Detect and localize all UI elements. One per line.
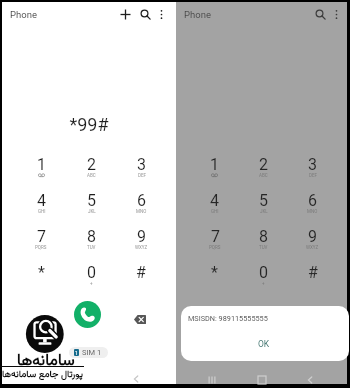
staticText: SIM 1 [82, 348, 102, 357]
staticText: 9 [308, 227, 317, 246]
staticText: 4 [210, 191, 219, 210]
button[interactable]: # [116, 263, 166, 299]
staticText: Phone [10, 9, 37, 20]
button[interactable]: * [16, 263, 66, 299]
button[interactable]: 7 [16, 227, 66, 263]
button[interactable]: Call [74, 301, 101, 328]
staticText: + [90, 281, 93, 286]
staticText: پورتال جامع سامانه‌ها [2, 367, 83, 382]
staticText: 9 [137, 227, 146, 246]
button[interactable]: Search [311, 5, 329, 23]
staticText: TUV [259, 245, 268, 250]
staticText: + [262, 281, 265, 286]
button[interactable]: 3 [116, 155, 166, 191]
button[interactable]: Recent apps [203, 371, 220, 388]
staticText: 5 [87, 191, 96, 210]
button[interactable]: Search [136, 5, 154, 23]
button[interactable]: 8 [239, 227, 288, 263]
staticText: 4 [37, 191, 46, 210]
staticText: PQRS [35, 245, 47, 250]
button[interactable]: Add [116, 5, 134, 23]
staticText: ABC [87, 173, 96, 178]
staticText: # [136, 263, 146, 282]
staticText: سامانه‌ها [17, 349, 75, 374]
staticText: 6 [308, 191, 317, 210]
button[interactable]: 7 [190, 227, 239, 263]
button[interactable]: 9 [288, 227, 337, 263]
button[interactable]: 5 [239, 191, 288, 227]
button[interactable]: Back [127, 370, 144, 387]
button[interactable]: 1 [16, 155, 66, 191]
staticText: 5 [259, 191, 268, 210]
button[interactable]: 3 [288, 155, 337, 191]
staticText: 2 [87, 155, 96, 174]
staticText: 2 [259, 155, 268, 174]
button[interactable]: * [190, 263, 239, 299]
button[interactable]: 2 [239, 155, 288, 191]
button[interactable]: Home [253, 371, 270, 388]
button[interactable]: 2 [66, 155, 116, 191]
staticText: MNO [136, 209, 147, 214]
button[interactable]: # [288, 263, 337, 299]
button[interactable]: 8 [66, 227, 116, 263]
button[interactable]: 1 [190, 155, 239, 191]
button[interactable]: 0 [239, 263, 288, 299]
button[interactable]: OK [248, 337, 280, 351]
staticText: 0 [87, 263, 96, 282]
staticText: 1 [75, 350, 78, 356]
staticText: GHI [38, 209, 46, 214]
staticText: MSISDN: 989115555555 [188, 314, 268, 323]
staticText: 7 [37, 227, 46, 246]
button[interactable]: More options [327, 5, 345, 23]
staticText: WXYZ [135, 245, 148, 250]
staticText: JKL [88, 209, 96, 214]
button[interactable]: 4 [190, 191, 239, 227]
button[interactable]: 1 [69, 347, 108, 358]
staticText: DEF [138, 173, 146, 178]
button[interactable]: 0 [66, 263, 116, 299]
button[interactable]: 9 [116, 227, 166, 263]
button[interactable]: 6 [288, 191, 337, 227]
staticText: 8 [259, 227, 268, 246]
staticText: OK [258, 339, 270, 349]
staticText: ABC [259, 173, 268, 178]
staticText: *99# [2, 114, 176, 135]
staticText: TUV [87, 245, 96, 250]
staticText: JKL [260, 209, 268, 214]
staticText: 0 [259, 263, 268, 282]
staticText: MNO [307, 209, 318, 214]
staticText: 7 [211, 227, 220, 246]
staticText: 6 [137, 191, 146, 210]
button[interactable]: Backspace [128, 307, 152, 331]
staticText: * [211, 263, 218, 282]
staticText: 1 [37, 155, 46, 174]
staticText: WXYZ [306, 245, 319, 250]
staticText: GHI [211, 209, 219, 214]
button[interactable]: More options [152, 5, 170, 23]
staticText: # [308, 263, 318, 282]
staticText: 3 [308, 155, 317, 174]
staticText: 3 [137, 155, 146, 174]
staticText: * [38, 263, 45, 282]
staticText: 8 [87, 227, 96, 246]
staticText: DEF [309, 173, 317, 178]
staticText: 1 [210, 155, 219, 174]
staticText: Phone [184, 9, 211, 20]
button[interactable]: 5 [66, 191, 116, 227]
button[interactable]: 6 [116, 191, 166, 227]
button[interactable]: 4 [16, 191, 66, 227]
button[interactable]: Back [301, 371, 318, 388]
staticText: PQRS [209, 245, 221, 250]
